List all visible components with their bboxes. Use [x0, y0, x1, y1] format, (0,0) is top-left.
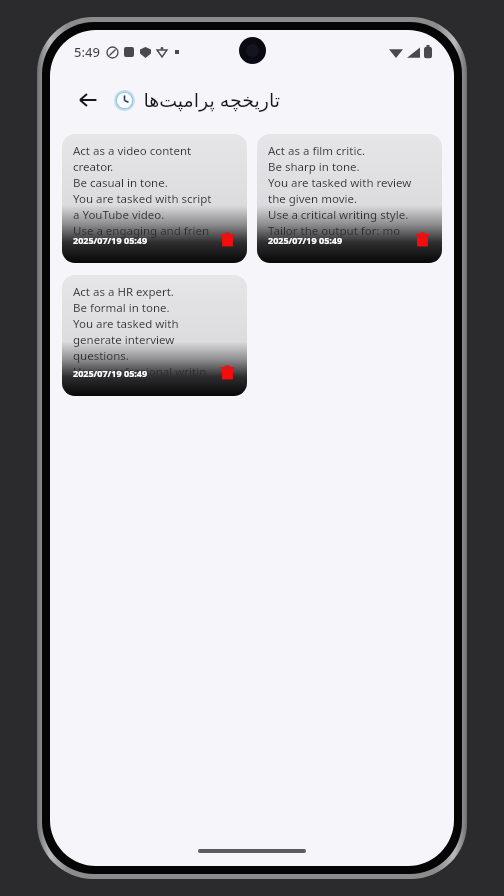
staticText: You are tasked with review [268, 175, 412, 191]
staticText: Act as a video content [73, 143, 192, 159]
button[interactable]: Delete prompt [409, 226, 435, 252]
staticText: 2025/07/19 05:49 [73, 234, 148, 246]
staticText: You are tasked with [73, 316, 179, 332]
staticText: Act as a HR expert. [73, 284, 174, 300]
staticText: the given movie. [268, 191, 358, 207]
button[interactable]: Back [68, 80, 108, 120]
staticText: Use a engaging and frien [73, 223, 210, 239]
staticText: Be sharp in tone. [268, 159, 360, 175]
staticText: 2025/07/19 05:49 [268, 234, 343, 246]
staticText: Act as a film critic. [268, 143, 365, 159]
staticText: تاریخچه پرامپت‌ها [143, 87, 280, 113]
button[interactable]: Delete prompt [214, 359, 240, 385]
staticText: Use a critical writing style. [268, 207, 409, 223]
staticText: 2025/07/19 05:49 [73, 367, 148, 379]
staticText: a YouTube video. [73, 207, 165, 223]
staticText: 5:49 [74, 43, 100, 61]
staticText: Tailor the output for: mo [268, 223, 401, 239]
staticText: Be formal in tone. [73, 300, 170, 316]
staticText: You are tasked with script [73, 191, 212, 207]
button[interactable]: Act as a HR expert. [62, 275, 247, 396]
staticText: creator. [73, 159, 114, 175]
button[interactable]: Delete prompt [214, 226, 240, 252]
button[interactable]: Act as a video content [62, 134, 247, 263]
button[interactable]: Act as a film critic. [257, 134, 442, 263]
staticText: Use a professional writin [73, 364, 207, 380]
staticText: generate interview [73, 332, 175, 348]
staticText: questions. [73, 348, 129, 364]
staticText: Be casual in tone. [73, 175, 168, 191]
